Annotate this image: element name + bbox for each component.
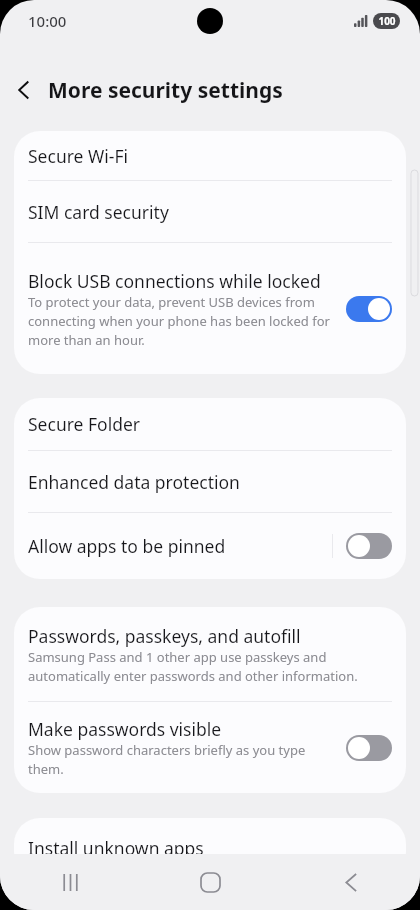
button[interactable]: SIM card security (14, 181, 406, 242)
staticText: Show password characters briefly as you … (28, 741, 338, 778)
button[interactable]: Make passwords visible (14, 702, 406, 793)
button[interactable]: Passwords, passkeys, and autofill (14, 607, 406, 701)
button[interactable]: Switch on (346, 296, 392, 322)
staticText: 100 (378, 14, 396, 28)
button[interactable]: Switch off (346, 735, 392, 761)
staticText: 10:00 (28, 11, 67, 31)
staticText: SIM card security (28, 200, 169, 224)
button[interactable]: Switch off (346, 533, 392, 559)
staticText: Make passwords visible (28, 717, 222, 741)
staticText: Block USB connections while locked (28, 269, 321, 293)
staticText: To protect your data, prevent USB device… (28, 293, 338, 349)
staticText: Passwords, passkeys, and autofill (28, 624, 301, 648)
button[interactable]: Block USB connections while locked (14, 243, 406, 374)
staticText: Secure Wi-Fi (28, 144, 129, 168)
staticText: Secure Folder (28, 412, 141, 436)
button[interactable]: Recent apps (0, 854, 140, 910)
staticText: Samsung Pass and 1 other app use passkey… (28, 648, 384, 685)
staticText: Enhanced data protection (28, 470, 240, 494)
button[interactable]: Allow apps to be pinned (14, 513, 406, 579)
button[interactable]: Install unknown apps (14, 818, 406, 878)
staticText: More security settings (48, 76, 283, 105)
staticText: Install unknown apps (28, 836, 204, 860)
staticText: Allow apps to be pinned (28, 534, 226, 558)
button[interactable]: Navigate up (0, 66, 48, 114)
button[interactable]: Back (280, 854, 420, 910)
button[interactable]: Secure Folder (14, 398, 406, 450)
button[interactable]: Enhanced data protection (14, 451, 406, 512)
button[interactable]: Home (140, 854, 280, 910)
button[interactable]: Secure Wi-Fi (14, 131, 406, 180)
